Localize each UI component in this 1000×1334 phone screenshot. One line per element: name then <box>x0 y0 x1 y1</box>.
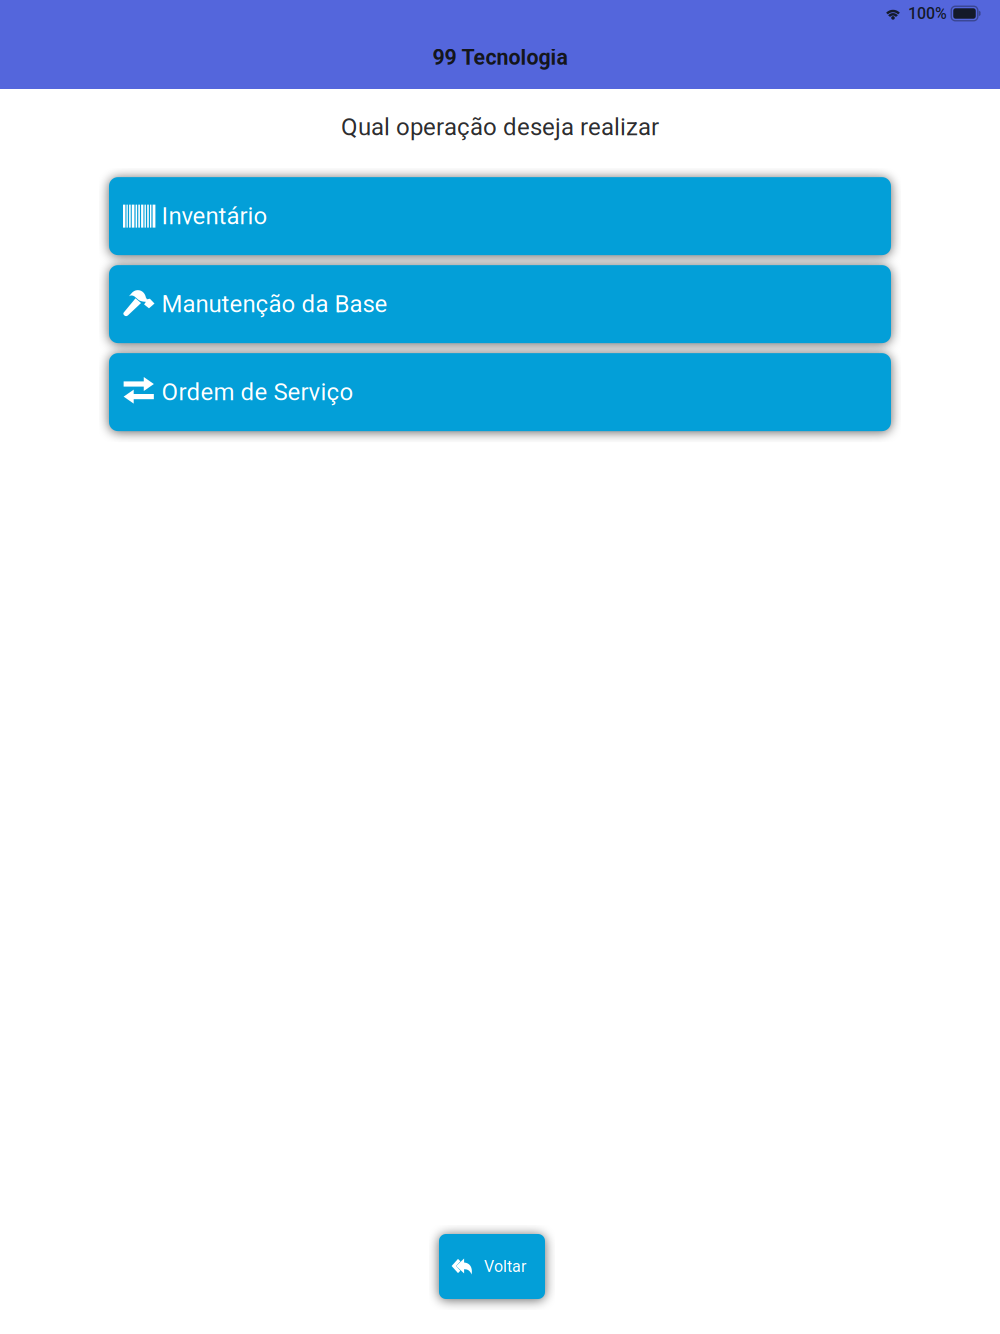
staticText: Inventário <box>161 202 267 230</box>
staticText: 99 Tecnologia <box>432 45 567 70</box>
staticText: 100% <box>908 4 947 23</box>
staticText: Voltar <box>484 1257 526 1276</box>
button[interactable]: Ordem de Serviço <box>109 353 891 431</box>
staticText: Qual operação deseja realizar <box>341 113 659 141</box>
staticText: Ordem de Serviço <box>161 378 353 406</box>
staticText: Manutenção da Base <box>161 290 387 318</box>
button[interactable]: Inventário <box>109 177 891 255</box>
button[interactable]: Manutenção da Base <box>109 265 891 343</box>
button[interactable]: Voltar <box>439 1234 545 1299</box>
